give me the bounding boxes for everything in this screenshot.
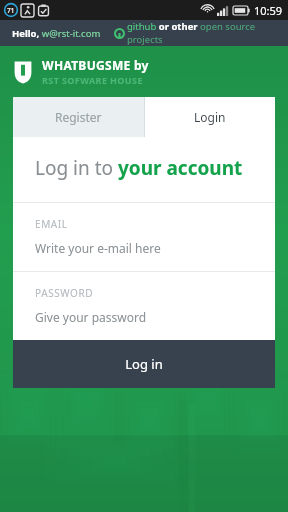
staticText: Write your e-mail here (35, 240, 161, 256)
staticText: Register (55, 109, 102, 125)
button[interactable]: PASSWORD (13, 272, 275, 340)
staticText: EMAIL (35, 217, 68, 231)
button[interactable]: Register (13, 97, 144, 137)
staticText: Login (194, 109, 226, 125)
button[interactable]: Login (145, 97, 275, 137)
staticText: 71 (7, 6, 15, 15)
staticText: 10:59 (254, 3, 283, 18)
staticText: RST SOFWARE HOUSE (42, 74, 143, 86)
button[interactable]: Log in (13, 340, 275, 388)
staticText: Give your password (35, 309, 147, 325)
other: GitHub (115, 29, 124, 38)
staticText: WHATBUGSME by (42, 57, 149, 73)
button[interactable]: EMAIL (13, 203, 275, 271)
staticText: Hello, w@rst-it.com (12, 27, 101, 40)
other: WhatBugsMe logo (13, 60, 33, 84)
staticText: Log in (125, 355, 163, 373)
staticText: PASSWORD (35, 286, 94, 300)
staticText: Log in to your account (35, 155, 243, 181)
staticText: github or other open source projects (127, 20, 288, 46)
